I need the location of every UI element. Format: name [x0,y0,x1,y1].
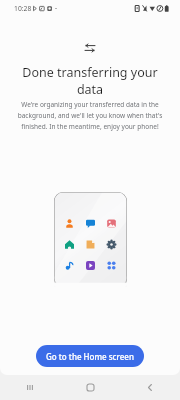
staticText: Go to the Home screen [46,351,134,362]
staticText: 10:28 [14,4,32,13]
staticText: We're organizing your transferred data i… [16,100,164,131]
button[interactable]: Back [120,375,180,400]
staticText: Done transferring your data [18,64,162,97]
button[interactable]: Home [60,375,120,400]
button[interactable]: Go to the Home screen [36,345,144,367]
button[interactable]: Recents [0,375,60,400]
